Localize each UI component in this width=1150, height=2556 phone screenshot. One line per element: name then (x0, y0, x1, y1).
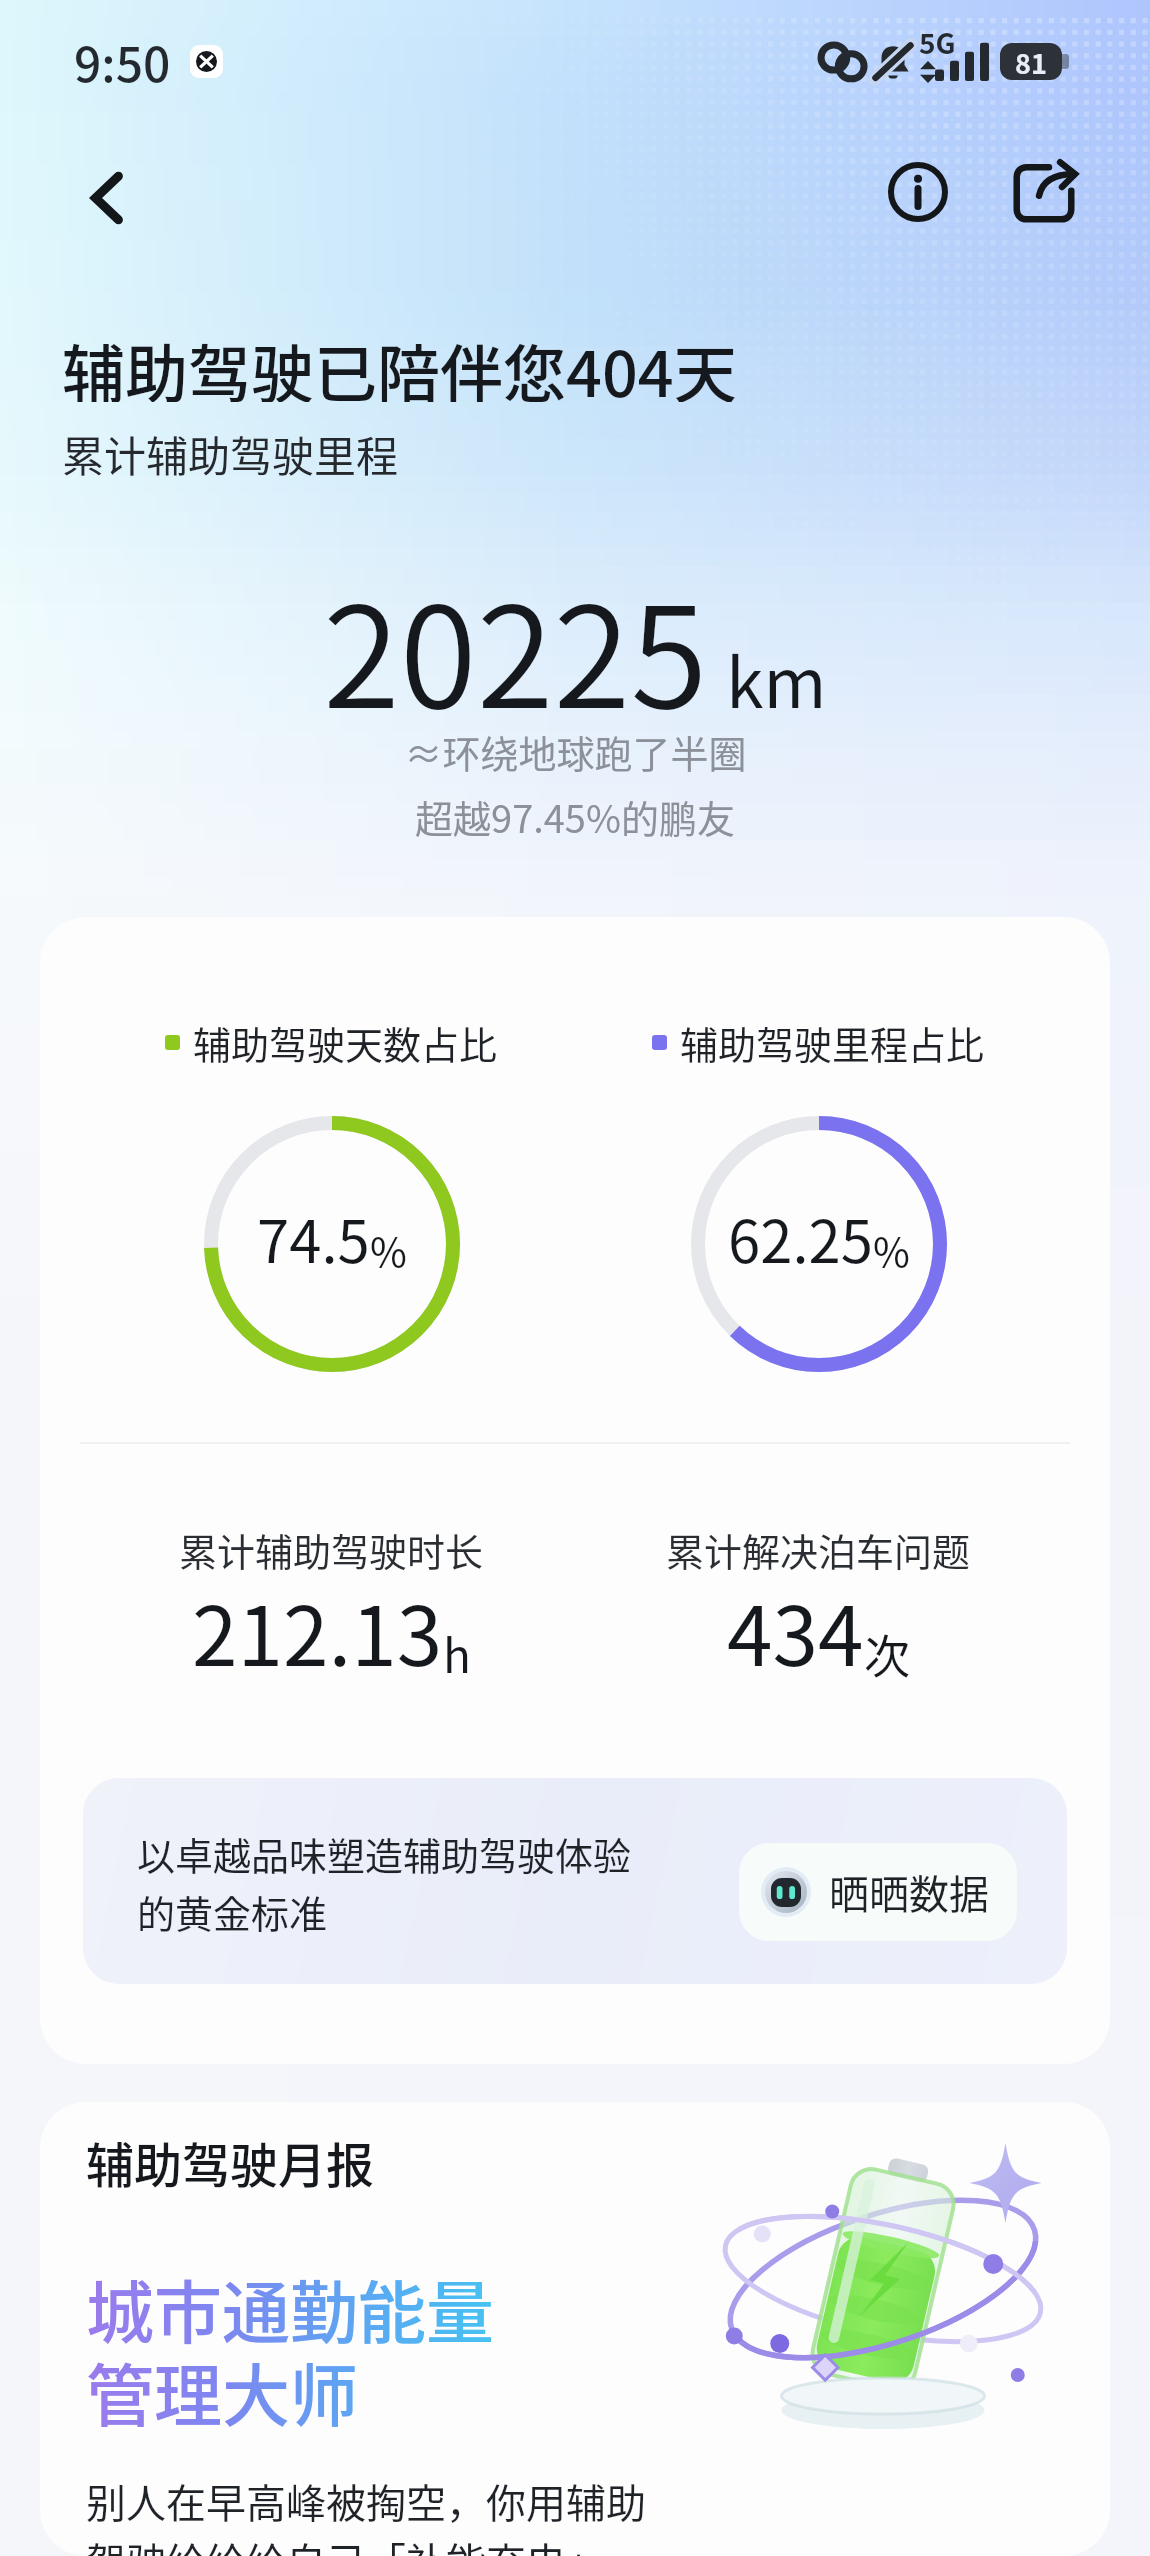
staticText: km (726, 629, 827, 727)
staticText: h (443, 1620, 471, 1687)
button[interactable]: Share (998, 146, 1090, 238)
staticText: 别人在早高峰被掏空，你用辅助 (86, 2472, 646, 2530)
staticText: 辅助驾驶已陪伴您404天 (62, 324, 737, 402)
staticText: 9:50 (74, 26, 171, 96)
staticText: 累计辅助驾驶里程 (62, 423, 399, 479)
button[interactable]: Information (872, 146, 964, 238)
button[interactable]: 辅助驾驶月报 (40, 2102, 1110, 2556)
staticText: 累计辅助驾驶时长 (179, 1522, 484, 1577)
button[interactable]: Back (62, 152, 154, 244)
staticText: % (370, 1221, 407, 1279)
staticText: 5G (919, 22, 956, 63)
staticText: 累计解决泊车问题 (666, 1522, 971, 1577)
staticText: 74.5 (257, 1196, 370, 1280)
staticText: 晒晒数据 (829, 1863, 989, 1921)
staticText: 管理大师 (86, 2342, 359, 2440)
staticText: 辅助驾驶里程占比 (680, 1015, 985, 1070)
button[interactable]: 晒晒数据 (739, 1843, 1017, 1941)
staticText: ≈环绕地球跑了半圈 (404, 724, 747, 779)
staticText: 62.25 (728, 1196, 873, 1280)
staticText: 以卓越品味塑造辅助驾驶体验 (137, 1826, 632, 1881)
staticText: 434 (727, 1571, 864, 1690)
staticText: 212.13 (192, 1571, 443, 1690)
staticText: 次 (864, 1620, 910, 1687)
staticText: 超越97.45%的鹏友 (415, 789, 735, 844)
staticText: 20225 (323, 546, 708, 749)
staticText: 辅助驾驶月报 (86, 2127, 375, 2197)
staticText: 驾驶给给给自己「补能充电」 (86, 2531, 606, 2556)
staticText: 81 (1015, 43, 1047, 80)
staticText: 的黄金标准 (137, 1884, 328, 1939)
staticText: 辅助驾驶天数占比 (193, 1015, 498, 1070)
staticText: % (873, 1221, 910, 1279)
staticText: 城市通勤能量 (86, 2259, 495, 2357)
